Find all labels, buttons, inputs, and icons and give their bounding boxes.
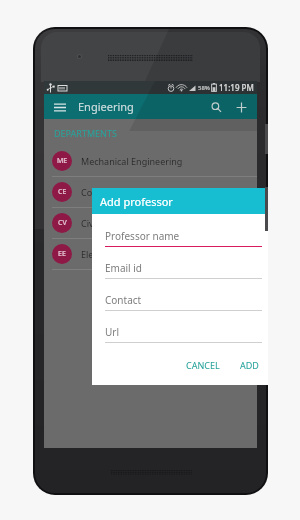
staticText: Engieering [78, 99, 134, 114]
staticText: Add professor [100, 194, 173, 209]
staticText: 58% [198, 84, 210, 92]
button[interactable]: EE [44, 239, 257, 270]
staticText: Computer Engineering [81, 186, 178, 198]
button[interactable]: Url [105, 325, 262, 343]
staticText: ADD [240, 359, 259, 371]
button[interactable]: Contact [105, 293, 262, 311]
button[interactable]: Professor name [105, 229, 262, 247]
button[interactable]: CV [44, 208, 257, 239]
button[interactable]: Add [232, 98, 250, 116]
staticText: Professor name [105, 229, 180, 243]
button[interactable]: ME [44, 146, 257, 177]
button[interactable]: CANCEL [180, 355, 226, 375]
staticText: CE [58, 187, 67, 197]
staticText: Civil Engineering [81, 217, 152, 229]
button[interactable]: ADD [234, 355, 265, 375]
staticText: CV [58, 218, 67, 228]
staticText: CANCEL [186, 359, 220, 371]
staticText: Mechanical Engineering [81, 155, 183, 167]
staticText: Contact [105, 293, 142, 307]
button[interactable]: Search [207, 98, 225, 116]
staticText: DEPARTMENTS [54, 127, 117, 139]
staticText: ME [57, 156, 68, 166]
staticText: EE [58, 249, 66, 259]
staticText: Url [105, 325, 120, 339]
staticText: 11:19 PM [219, 82, 254, 93]
staticText: Electrical Engineering [81, 248, 173, 260]
button[interactable]: CE [44, 177, 257, 208]
button[interactable]: Email id [105, 261, 262, 279]
button[interactable]: Open navigation drawer [51, 98, 69, 116]
staticText: Email id [105, 261, 143, 275]
